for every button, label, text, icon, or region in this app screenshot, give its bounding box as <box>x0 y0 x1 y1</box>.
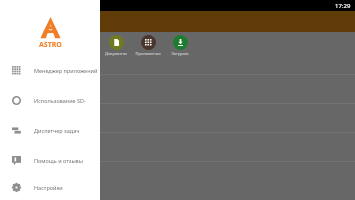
button[interactable]: Использование SD-карты <box>0 85 100 115</box>
button[interactable]: Documents <box>103 35 129 56</box>
staticText: Документы <box>103 51 129 56</box>
staticText: Настройки <box>34 184 63 191</box>
button[interactable]: Менеджер приложений <box>0 55 100 85</box>
button[interactable]: Диспетчер задач <box>0 115 100 145</box>
button[interactable]: Apps <box>135 35 161 56</box>
staticText: ASTRO <box>39 40 62 50</box>
staticText: Приложения <box>135 51 161 56</box>
button[interactable]: Помощь и отзывы <box>0 145 100 175</box>
staticText: Загрузки <box>167 51 193 56</box>
staticText: Диспетчер задач <box>34 127 80 134</box>
staticText: Помощь и отзывы <box>34 157 83 164</box>
button[interactable]: Настройки <box>0 175 100 200</box>
staticText: Использование SD-карты <box>34 97 100 104</box>
button[interactable]: Downloads <box>167 35 193 56</box>
staticText: 17:29 <box>335 2 351 10</box>
staticText: Менеджер приложений <box>34 67 98 74</box>
